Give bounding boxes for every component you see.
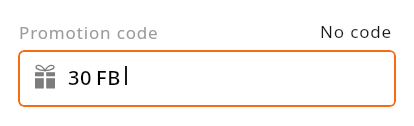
staticText: No code bbox=[320, 20, 393, 43]
staticText: Promotion code bbox=[19, 21, 159, 44]
staticText: FB bbox=[96, 64, 121, 91]
button[interactable]: Gift promotion bbox=[18, 50, 396, 107]
staticText: 30 bbox=[68, 64, 93, 91]
button[interactable]: Promotion code bbox=[19, 21, 159, 44]
button[interactable]: No code bbox=[320, 20, 393, 43]
other: Gift promotion bbox=[35, 64, 55, 89]
